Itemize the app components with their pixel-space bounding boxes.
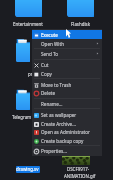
- button[interactable]: Copy: [32, 69, 102, 78]
- staticText: Entertainment: [13, 21, 43, 27]
- staticText: Flashdisk: [71, 21, 90, 27]
- button[interactable]: Cut: [32, 60, 102, 69]
- button[interactable]: Properties...: [32, 146, 102, 155]
- staticText: Open as Administrator: [41, 129, 90, 135]
- staticText: Create backup copy: [41, 138, 84, 144]
- staticText: drawing.svg: [16, 166, 40, 173]
- staticText: Cut: [41, 62, 49, 68]
- staticText: Rename...: [41, 101, 63, 107]
- staticText: Create Archive...: [41, 121, 76, 127]
- button[interactable]: drawing.svg: [16, 166, 40, 173]
- button[interactable]: Move to Trash: [32, 80, 102, 89]
- staticText: Set as wallpaper: [41, 112, 77, 118]
- staticText: pn: [28, 71, 34, 77]
- button[interactable]: Delete: [32, 88, 102, 97]
- button[interactable]: Set as wallpaper: [32, 110, 102, 119]
- button[interactable]: Create backup copy: [32, 136, 102, 145]
- button[interactable]: Send To: [32, 49, 102, 58]
- staticText: Open With: [41, 41, 64, 47]
- button[interactable]: Execute: [32, 30, 102, 39]
- staticText: Delete: [41, 90, 55, 96]
- staticText: ANIMATION.gif: [64, 173, 96, 179]
- other: Pointer: [66, 29, 72, 38]
- staticText: Send To: [41, 51, 58, 57]
- staticText: DSCF9917-: [67, 166, 90, 172]
- staticText: Execute: [41, 32, 58, 38]
- button[interactable]: Create Archive...: [32, 119, 102, 128]
- staticText: Copy: [41, 71, 52, 77]
- staticText: Telegram: [12, 114, 32, 120]
- button[interactable]: Open as Administrator: [32, 127, 102, 136]
- staticText: Properties...: [41, 148, 68, 154]
- button[interactable]: Rename...: [32, 99, 102, 108]
- staticText: Move to Trash: [41, 82, 72, 88]
- button[interactable]: Open With: [32, 39, 102, 48]
